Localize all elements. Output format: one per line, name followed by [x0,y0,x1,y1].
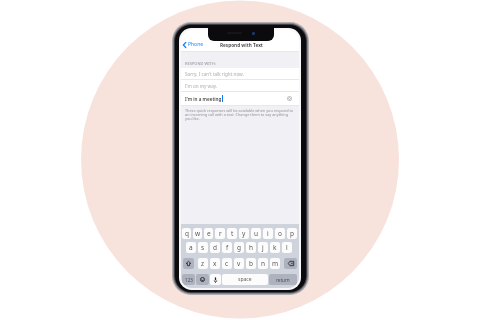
button[interactable]: q [182,228,191,239]
button[interactable]: c [222,258,232,269]
button[interactable]: I'm on my way. [181,80,299,91]
button[interactable]: y [239,228,249,239]
button[interactable]: o [275,228,285,239]
button[interactable]: b [246,258,256,269]
button[interactable]: i [263,228,273,239]
staticText: u [254,229,259,238]
staticText: p [290,229,294,238]
staticText: m [272,259,279,268]
button[interactable]: g [234,242,244,253]
staticText: n [261,259,266,268]
button[interactable]: r [215,228,225,239]
staticText: t [231,229,234,238]
staticText: RESPOND WITH: [185,61,216,66]
button[interactable]: x [210,258,220,269]
button[interactable]: f [222,242,232,253]
button[interactable]: n [258,258,268,269]
button[interactable]: return [269,274,297,285]
button[interactable]: Shift [183,258,194,269]
other: Clear text [287,96,292,101]
button[interactable]: s [198,242,208,253]
staticText: b [249,259,253,268]
button[interactable]: Emoji [196,274,209,285]
button[interactable]: 123 [182,274,195,285]
staticText: I'm in a meeting [185,96,222,102]
staticText: return [276,277,290,283]
button[interactable]: z [198,258,208,269]
staticText: x [213,259,217,268]
staticText: 123 [185,277,193,283]
button[interactable]: k [270,242,280,253]
staticText: e [207,229,211,238]
staticText: Sorry, I can't talk right now. [185,71,244,77]
button[interactable]: d [210,242,220,253]
staticText: l [286,243,288,252]
staticText: These quick responses will be available … [185,108,294,121]
button[interactable]: t [227,228,237,239]
button[interactable]: Sorry, I can't talk right now. [181,68,299,79]
staticText: y [242,229,246,238]
staticText: h [249,243,254,252]
staticText: z [201,259,205,268]
button[interactable]: l [282,242,292,253]
button[interactable]: I'm in a meeting [181,92,299,105]
staticText: g [237,243,241,252]
staticText: c [225,259,229,268]
button[interactable]: a [186,242,196,253]
button[interactable]: Phone [182,40,205,49]
staticText: f [226,243,229,252]
button[interactable]: v [234,258,244,269]
staticText: w [195,229,201,238]
button[interactable]: h [246,242,256,253]
staticText: j [262,243,264,252]
staticText: i [267,229,269,238]
staticText: o [278,229,282,238]
staticText: Respond with Text [220,42,263,48]
button[interactable]: e [204,228,213,239]
button[interactable]: p [287,228,297,239]
button[interactable]: Backspace [284,258,297,269]
staticText: a [189,243,193,252]
button[interactable]: w [193,228,202,239]
staticText: v [237,259,241,268]
staticText: k [273,243,277,252]
button[interactable]: u [251,228,261,239]
button[interactable]: m [270,258,280,269]
button[interactable]: j [258,242,268,253]
staticText: I'm on my way. [185,83,218,89]
staticText: Phone [188,41,204,48]
staticText: d [213,243,217,252]
button[interactable]: space [222,274,268,285]
button[interactable]: Dictation [210,274,221,285]
staticText: q [185,229,189,238]
staticText: space [238,276,252,283]
staticText: s [201,243,205,252]
staticText: r [219,229,222,238]
